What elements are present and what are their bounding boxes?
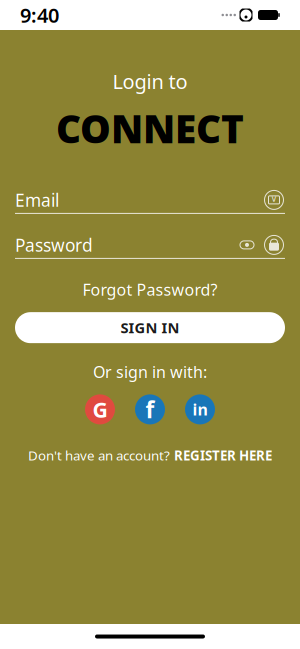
staticText: Forgot Password? [82, 279, 217, 300]
staticText: G [92, 395, 107, 423]
staticText: in [192, 399, 207, 420]
staticText: ∨ [270, 193, 277, 204]
button[interactable]: SIGN IN [15, 312, 285, 343]
staticText: f [145, 394, 154, 424]
button[interactable]: Sign in with LinkedIn [185, 394, 215, 424]
button[interactable]: Don't have an account? [18, 440, 282, 470]
staticText: Login to [112, 68, 187, 95]
button[interactable]: Sign in with Facebook [135, 394, 165, 424]
staticText: CONNECT [56, 103, 244, 154]
staticText: Or sign in with: [93, 361, 207, 382]
staticText: SIGN IN [120, 318, 179, 337]
staticText: Don't have an account? [28, 446, 170, 464]
staticText: REGISTER HERE [174, 446, 272, 464]
button[interactable]: Forgot Password? [72, 273, 227, 306]
staticText: Email [15, 188, 59, 211]
staticText: Password [15, 233, 93, 256]
staticText: 9:40 [20, 2, 59, 28]
button[interactable]: Sign in with Google [85, 394, 115, 424]
